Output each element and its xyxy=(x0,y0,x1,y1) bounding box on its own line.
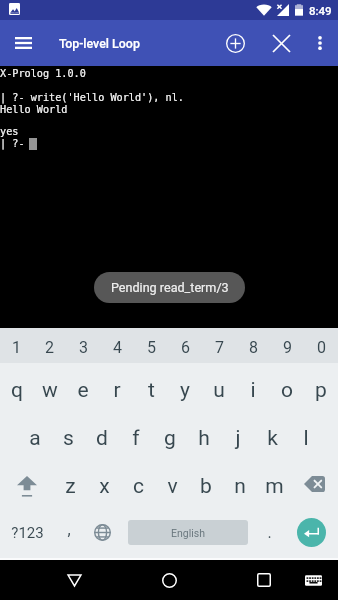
button[interactable]: k xyxy=(255,411,289,459)
button[interactable]: o xyxy=(270,363,304,411)
staticText: 3 xyxy=(79,338,88,357)
staticText: g xyxy=(164,426,176,451)
staticText: n xyxy=(234,474,246,499)
staticText: Hello World xyxy=(0,104,68,116)
button[interactable]: i xyxy=(236,363,270,411)
staticText: q xyxy=(11,378,23,403)
button[interactable]: y xyxy=(168,363,202,411)
button[interactable]: c xyxy=(121,459,155,507)
staticText: l xyxy=(303,426,309,451)
staticText: z xyxy=(65,474,76,499)
staticText: s xyxy=(63,426,74,451)
button[interactable]: 7 xyxy=(202,328,236,363)
button[interactable]: Close xyxy=(260,20,303,66)
button[interactable]: l xyxy=(289,411,323,459)
staticText: c xyxy=(133,474,144,499)
staticText: 2 xyxy=(45,338,54,357)
button[interactable]: d xyxy=(85,411,119,459)
staticText: a xyxy=(29,426,41,451)
button[interactable]: t xyxy=(134,363,168,411)
button[interactable]: 5 xyxy=(134,328,168,363)
staticText: Pending read_term/3 xyxy=(111,280,229,295)
button[interactable]: 0 xyxy=(304,328,338,363)
button[interactable]: Backspace xyxy=(291,459,338,507)
button[interactable]: 8 xyxy=(236,328,270,363)
staticText: w xyxy=(42,378,58,403)
button[interactable]: Recent apps xyxy=(244,560,284,600)
staticText: 7 xyxy=(215,338,224,357)
staticText: 1 xyxy=(12,338,21,357)
staticText: 6 xyxy=(181,338,190,357)
button[interactable]: Shift xyxy=(0,459,54,507)
button[interactable]: 1 xyxy=(0,328,33,363)
staticText: y xyxy=(180,378,190,403)
button[interactable]: More options xyxy=(301,20,338,66)
staticText: 5 xyxy=(147,338,156,357)
staticText: t xyxy=(148,378,155,403)
staticText: r xyxy=(113,378,121,403)
button[interactable]: v xyxy=(155,459,189,507)
staticText: d xyxy=(96,426,108,451)
button[interactable]: English xyxy=(122,507,253,558)
staticText: v xyxy=(167,474,178,499)
staticText: English xyxy=(171,527,205,539)
button[interactable]: a xyxy=(18,411,51,459)
staticText: | ?- xyxy=(0,138,31,150)
staticText: 8:49 xyxy=(309,4,332,17)
button[interactable]: f xyxy=(119,411,153,459)
staticText: 4 xyxy=(113,338,122,357)
staticText: | ?- write('Hello World'), nl. xyxy=(0,92,185,104)
staticText: o xyxy=(281,378,293,403)
staticText: ?123 xyxy=(11,524,44,542)
staticText: . xyxy=(267,523,272,542)
button[interactable]: . xyxy=(253,507,285,558)
button[interactable]: Navigation drawer xyxy=(0,20,46,66)
staticText: h xyxy=(198,426,210,451)
button[interactable]: Back xyxy=(54,560,94,600)
button[interactable]: g xyxy=(153,411,187,459)
button[interactable]: Enter xyxy=(297,518,326,547)
button[interactable]: q xyxy=(0,363,33,411)
staticText: b xyxy=(200,474,212,499)
staticText: 8 xyxy=(249,338,258,357)
staticText: x xyxy=(99,474,110,499)
staticText: i xyxy=(250,378,256,403)
staticText: , xyxy=(67,520,71,539)
button[interactable]: r xyxy=(100,363,134,411)
button[interactable]: h xyxy=(187,411,221,459)
staticText: m xyxy=(265,474,284,499)
button[interactable]: ?123 xyxy=(0,507,55,558)
button[interactable]: 2 xyxy=(33,328,66,363)
button[interactable]: n xyxy=(223,459,257,507)
button[interactable]: Change language xyxy=(82,507,122,558)
staticText: j xyxy=(235,426,241,451)
button[interactable]: u xyxy=(202,363,236,411)
staticText: e xyxy=(77,378,89,403)
button[interactable]: p xyxy=(304,363,338,411)
staticText: k xyxy=(267,426,278,451)
button[interactable]: Switch keyboard xyxy=(295,560,331,600)
button[interactable]: x xyxy=(87,459,121,507)
staticText: u xyxy=(213,378,225,403)
button[interactable]: w xyxy=(33,363,66,411)
button[interactable]: m xyxy=(257,459,291,507)
button[interactable]: z xyxy=(54,459,87,507)
button[interactable]: 4 xyxy=(100,328,134,363)
button[interactable]: b xyxy=(189,459,223,507)
button[interactable]: j xyxy=(221,411,255,459)
button[interactable]: e xyxy=(66,363,100,411)
staticText: X-Prolog 1.0.0 xyxy=(0,68,86,80)
staticText: 9 xyxy=(283,338,292,357)
button[interactable]: 3 xyxy=(66,328,100,363)
button[interactable]: s xyxy=(51,411,85,459)
staticText: p xyxy=(315,378,327,403)
button[interactable]: 6 xyxy=(168,328,202,363)
staticText: yes xyxy=(0,126,19,138)
staticText: Top-level Loop xyxy=(59,36,140,51)
button[interactable]: , xyxy=(55,507,82,558)
button[interactable]: 9 xyxy=(270,328,304,363)
button[interactable]: Home xyxy=(149,560,189,600)
button[interactable]: Add xyxy=(214,20,257,66)
staticText: f xyxy=(132,426,140,451)
staticText: 0 xyxy=(317,338,326,357)
